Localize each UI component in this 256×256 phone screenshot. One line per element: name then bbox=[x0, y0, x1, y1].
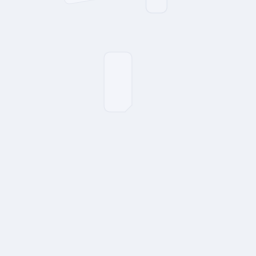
button[interactable]: Card tile bbox=[146, 0, 167, 13]
button[interactable]: Previous card bbox=[61, 0, 109, 1]
